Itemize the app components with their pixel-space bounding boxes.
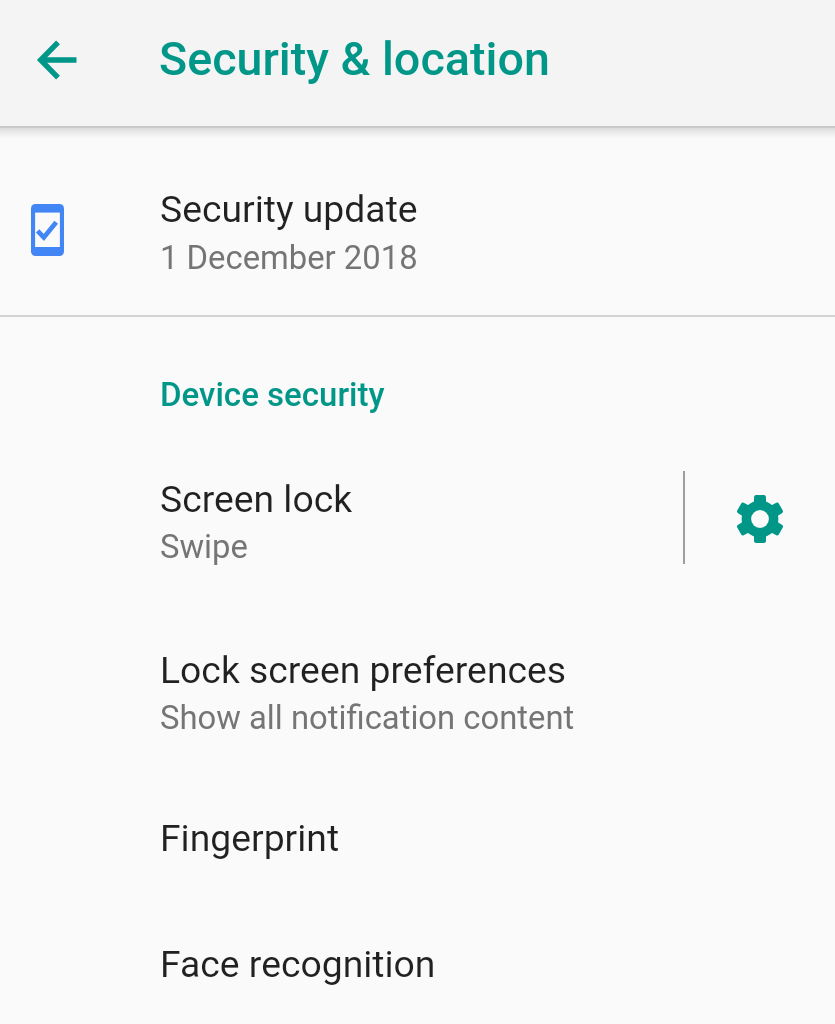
button[interactable]: Lock screen preferences — [0, 617, 835, 769]
staticText: Device security — [160, 375, 385, 414]
button[interactable]: Security update — [0, 126, 835, 315]
staticText: Fingerprint — [160, 816, 340, 860]
button[interactable]: Screen lock — [0, 446, 683, 598]
staticText: Security & location — [159, 32, 550, 87]
button[interactable]: Fingerprint — [0, 786, 835, 912]
staticText: Swipe — [160, 528, 248, 566]
button[interactable]: Face recognition — [0, 912, 835, 1024]
staticText: 1 December 2018 — [160, 239, 418, 277]
button[interactable]: Screen lock settings — [685, 446, 835, 598]
staticText: Lock screen preferences — [160, 648, 567, 692]
staticText: Screen lock — [160, 477, 353, 521]
staticText: Face recognition — [160, 942, 436, 986]
staticText: Security update — [160, 187, 418, 231]
staticText: Show all notification content — [160, 699, 575, 737]
button[interactable]: Back — [18, 21, 96, 99]
